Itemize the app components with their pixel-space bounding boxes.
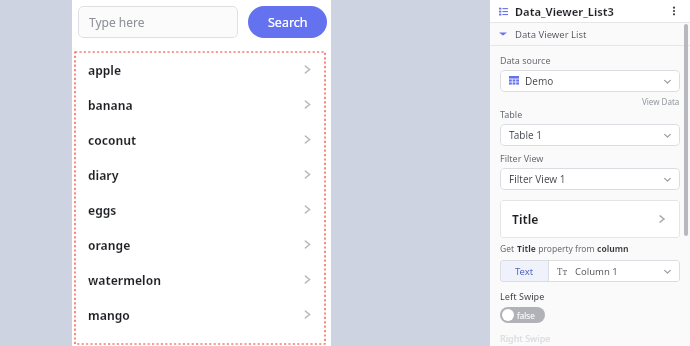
staticText: diary bbox=[88, 167, 119, 183]
staticText: banana bbox=[88, 97, 133, 113]
button[interactable]: orange bbox=[75, 227, 325, 262]
staticText: Get bbox=[500, 243, 517, 255]
staticText: column bbox=[597, 243, 629, 255]
button[interactable]: Text bbox=[500, 260, 548, 282]
staticText: Text bbox=[515, 265, 534, 278]
button[interactable]: More options bbox=[667, 4, 681, 18]
button[interactable]: Title bbox=[500, 200, 680, 238]
staticText: Demo bbox=[525, 74, 554, 88]
button[interactable]: mango bbox=[75, 297, 325, 332]
button[interactable]: apple bbox=[75, 52, 325, 87]
button[interactable]: Data_Viewer_List3 bbox=[490, 0, 690, 22]
staticText: Data Viewer List bbox=[515, 28, 587, 41]
staticText: Filter View 1 bbox=[509, 172, 566, 186]
button[interactable]: View Data bbox=[642, 96, 680, 107]
button[interactable]: Table 1 bbox=[500, 124, 680, 146]
button[interactable]: eggs bbox=[75, 192, 325, 227]
staticText: Right Swipe bbox=[500, 332, 551, 344]
staticText: property from bbox=[536, 243, 597, 255]
staticText: apple bbox=[88, 62, 122, 78]
staticText: Column 1 bbox=[575, 265, 618, 278]
button[interactable]: Type here bbox=[78, 6, 238, 38]
staticText: Title bbox=[517, 243, 536, 255]
staticText: View Data bbox=[642, 96, 680, 107]
staticText: Table 1 bbox=[509, 128, 543, 142]
button[interactable]: false bbox=[500, 307, 545, 323]
staticText: coconut bbox=[88, 132, 137, 148]
staticText: false bbox=[517, 310, 535, 321]
staticText: eggs bbox=[88, 202, 117, 218]
staticText: Data source bbox=[500, 54, 551, 66]
staticText: Type here bbox=[89, 14, 145, 30]
staticText: mango bbox=[88, 307, 130, 323]
button[interactable]: banana bbox=[75, 87, 325, 122]
staticText: Data_Viewer_List3 bbox=[515, 4, 614, 19]
staticText: Table bbox=[500, 108, 523, 120]
button[interactable]: diary bbox=[75, 157, 325, 192]
button[interactable]: Data Viewer List bbox=[490, 23, 690, 45]
button[interactable]: Filter View 1 bbox=[500, 168, 680, 190]
staticText: watermelon bbox=[88, 272, 161, 288]
button[interactable]: coconut bbox=[75, 122, 325, 157]
button[interactable]: Demo bbox=[500, 70, 680, 92]
staticText: Filter View bbox=[500, 152, 544, 164]
staticText: orange bbox=[88, 237, 131, 253]
staticText: Search bbox=[268, 14, 308, 31]
button[interactable]: watermelon bbox=[75, 262, 325, 297]
button[interactable]: Search bbox=[248, 6, 327, 38]
staticText: Tт bbox=[557, 265, 568, 277]
button[interactable]: Tт bbox=[549, 260, 680, 282]
staticText: Left Swipe bbox=[500, 290, 545, 302]
staticText: Title bbox=[512, 211, 539, 227]
